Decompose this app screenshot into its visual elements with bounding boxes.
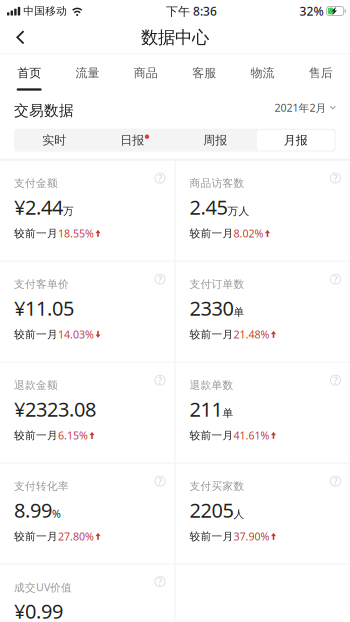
staticText: 较前一月	[14, 227, 58, 240]
staticText: 售后	[309, 66, 333, 80]
button[interactable]: 周报	[175, 129, 255, 152]
staticText: 27.80%	[58, 529, 94, 543]
button[interactable]: 退款单数	[175, 363, 350, 463]
staticText: ?	[333, 374, 337, 386]
button[interactable]: 2021年2月	[275, 93, 350, 123]
staticText: ?	[158, 575, 162, 588]
staticText: 流量	[75, 66, 99, 80]
staticText: ¥0.99	[14, 598, 63, 622]
staticText: 较前一月	[189, 429, 233, 442]
staticText: 万人	[227, 205, 249, 218]
button[interactable]: 客服	[175, 54, 233, 93]
staticText: 14.03%	[58, 327, 94, 341]
button[interactable]: 物流	[233, 54, 292, 93]
staticText: 8.02%	[233, 226, 263, 240]
staticText: 中国移动	[23, 4, 67, 17]
staticText: ?	[158, 172, 162, 184]
staticText: 实时	[42, 133, 66, 147]
staticText: 支付订单数	[189, 278, 244, 291]
staticText: 商品	[134, 66, 158, 80]
staticText: 较前一月	[14, 530, 58, 543]
staticText: ?	[158, 273, 162, 285]
staticText: ¥2323.08	[14, 396, 96, 422]
staticText: 2021年2月	[275, 101, 327, 115]
button[interactable]: 月报	[255, 129, 336, 152]
staticText: 8.99	[14, 497, 52, 523]
staticText: 37.90%	[233, 529, 269, 543]
staticText: 退款金额	[14, 379, 58, 392]
staticText: 2205	[189, 497, 233, 523]
staticText: 物流	[250, 66, 274, 80]
staticText: 交易数据	[14, 102, 74, 120]
button[interactable]: 日报	[94, 129, 175, 152]
staticText: ?	[333, 172, 337, 184]
staticText: 下午 8:36	[166, 3, 217, 19]
staticText: 退款单数	[189, 379, 233, 392]
staticText: 支付买家数	[189, 480, 244, 493]
staticText: 人	[233, 508, 244, 521]
staticText: 41.61%	[233, 428, 269, 442]
staticText: ?	[158, 374, 162, 386]
staticText: 客服	[192, 66, 216, 80]
button[interactable]: 商品访客数	[175, 161, 350, 261]
button[interactable]: 成交UV价值	[0, 565, 174, 622]
staticText: 32%	[300, 3, 324, 19]
button[interactable]: 实时	[14, 129, 94, 152]
staticText: 21.48%	[233, 327, 269, 341]
staticText: 单	[222, 407, 233, 420]
staticText: 成交UV价值	[14, 580, 72, 594]
staticText: 较前一月	[14, 429, 58, 442]
button[interactable]: 售后	[292, 54, 350, 93]
button[interactable]: 支付订单数	[175, 262, 350, 362]
staticText: 较前一月	[189, 328, 233, 341]
button[interactable]: 退款金额	[0, 363, 174, 463]
button[interactable]: 支付金额	[0, 161, 174, 261]
staticText: ?	[333, 475, 337, 487]
staticText: 单	[233, 306, 244, 319]
staticText: 较前一月	[14, 328, 58, 341]
staticText: ¥11.05	[14, 295, 74, 321]
staticText: 2.45	[189, 194, 227, 220]
staticText: 商品访客数	[189, 177, 244, 190]
staticText: 支付客单价	[14, 278, 69, 291]
button[interactable]: 支付转化率	[0, 464, 174, 564]
button[interactable]: Back	[0, 22, 41, 53]
staticText: 月报	[284, 133, 308, 147]
staticText: 万	[63, 205, 74, 218]
staticText: 较前一月	[189, 227, 233, 240]
staticText: ?	[158, 475, 162, 487]
staticText: 数据中心	[141, 27, 209, 48]
staticText: 211	[189, 396, 222, 422]
button[interactable]: 支付买家数	[175, 464, 350, 564]
button[interactable]: 商品	[117, 54, 175, 93]
staticText: ?	[333, 273, 337, 285]
staticText: 18.55%	[58, 226, 94, 240]
staticText: %	[52, 506, 61, 521]
staticText: 较前一月	[189, 530, 233, 543]
staticText: 2330	[189, 295, 233, 321]
staticText: 支付金额	[14, 177, 58, 190]
staticText: 6.15%	[58, 428, 88, 442]
staticText: ¥2.44	[14, 194, 63, 220]
staticText: 支付转化率	[14, 480, 69, 493]
button[interactable]: 支付客单价	[0, 262, 174, 362]
staticText: 周报	[203, 133, 227, 147]
button[interactable]: 流量	[58, 54, 117, 93]
staticText: 首页	[17, 66, 41, 80]
staticText: 日报	[120, 133, 144, 147]
button[interactable]: 首页	[0, 54, 58, 93]
